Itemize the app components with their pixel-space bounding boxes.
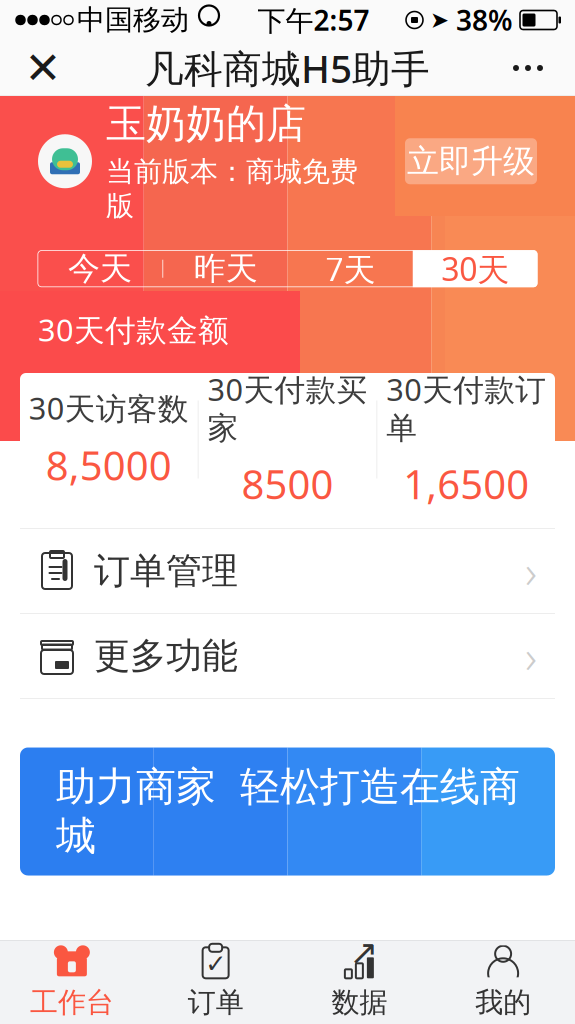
button[interactable]: ↗: [287, 940, 431, 1024]
staticText: 下午2:57: [257, 1, 369, 39]
staticText: 数据: [331, 985, 387, 1020]
staticText: 1,6500: [403, 457, 529, 510]
staticText: 38%: [456, 1, 513, 39]
staticText: 7天: [325, 247, 375, 290]
staticText: 8500: [241, 457, 333, 510]
staticText: 工作台: [30, 985, 114, 1020]
staticText: 当前版本：商城免费版: [106, 154, 358, 223]
staticText: 订单管理: [94, 549, 238, 593]
staticText: 订单: [188, 985, 244, 1020]
staticText: 昨天: [194, 249, 258, 288]
staticText: ¥: [38, 375, 67, 442]
button[interactable]: 助力商家 轻松打造在线商城: [20, 747, 555, 875]
staticText: ✕: [24, 43, 61, 93]
staticText: 我的: [475, 985, 531, 1020]
staticText: 30天访客数: [29, 388, 189, 428]
staticText: 立即升级: [407, 142, 535, 181]
staticText: ›: [525, 626, 537, 686]
staticText: 30天付款买家: [207, 369, 367, 447]
staticText: ✓: [205, 949, 226, 978]
button[interactable]: More options: [493, 41, 563, 95]
staticText: 玉奶奶的店: [106, 99, 306, 148]
staticText: ›: [515, 368, 531, 449]
staticText: 30天: [441, 247, 509, 290]
staticText: 中国移动: [77, 3, 189, 37]
staticText: ➤: [430, 7, 449, 33]
button[interactable]: 立即升级: [405, 138, 537, 184]
staticText: 凡科商城H5助手: [145, 42, 430, 94]
staticText: 更多功能: [94, 634, 238, 678]
staticText: 30天付款订单: [386, 369, 546, 447]
button[interactable]: 30天: [413, 250, 538, 287]
button[interactable]: 我的: [431, 940, 575, 1024]
button[interactable]: 更多功能: [0, 614, 575, 698]
button[interactable]: ✓: [144, 940, 288, 1024]
button[interactable]: 工作台: [0, 940, 144, 1024]
button[interactable]: Close: [12, 41, 74, 95]
button[interactable]: 今天: [37, 250, 162, 287]
button[interactable]: 订单管理: [0, 529, 575, 613]
staticText: ↗: [349, 933, 378, 972]
staticText: 30天付款金额: [38, 309, 229, 350]
staticText: 助力商家 轻松打造在线商城: [56, 762, 520, 861]
staticText: ›: [525, 541, 537, 601]
staticText: 178,5988: [81, 354, 432, 464]
staticText: 今天: [68, 249, 132, 288]
button[interactable]: 昨天: [163, 250, 288, 287]
staticText: 8,5000: [46, 438, 172, 491]
button[interactable]: 7天: [288, 250, 413, 287]
